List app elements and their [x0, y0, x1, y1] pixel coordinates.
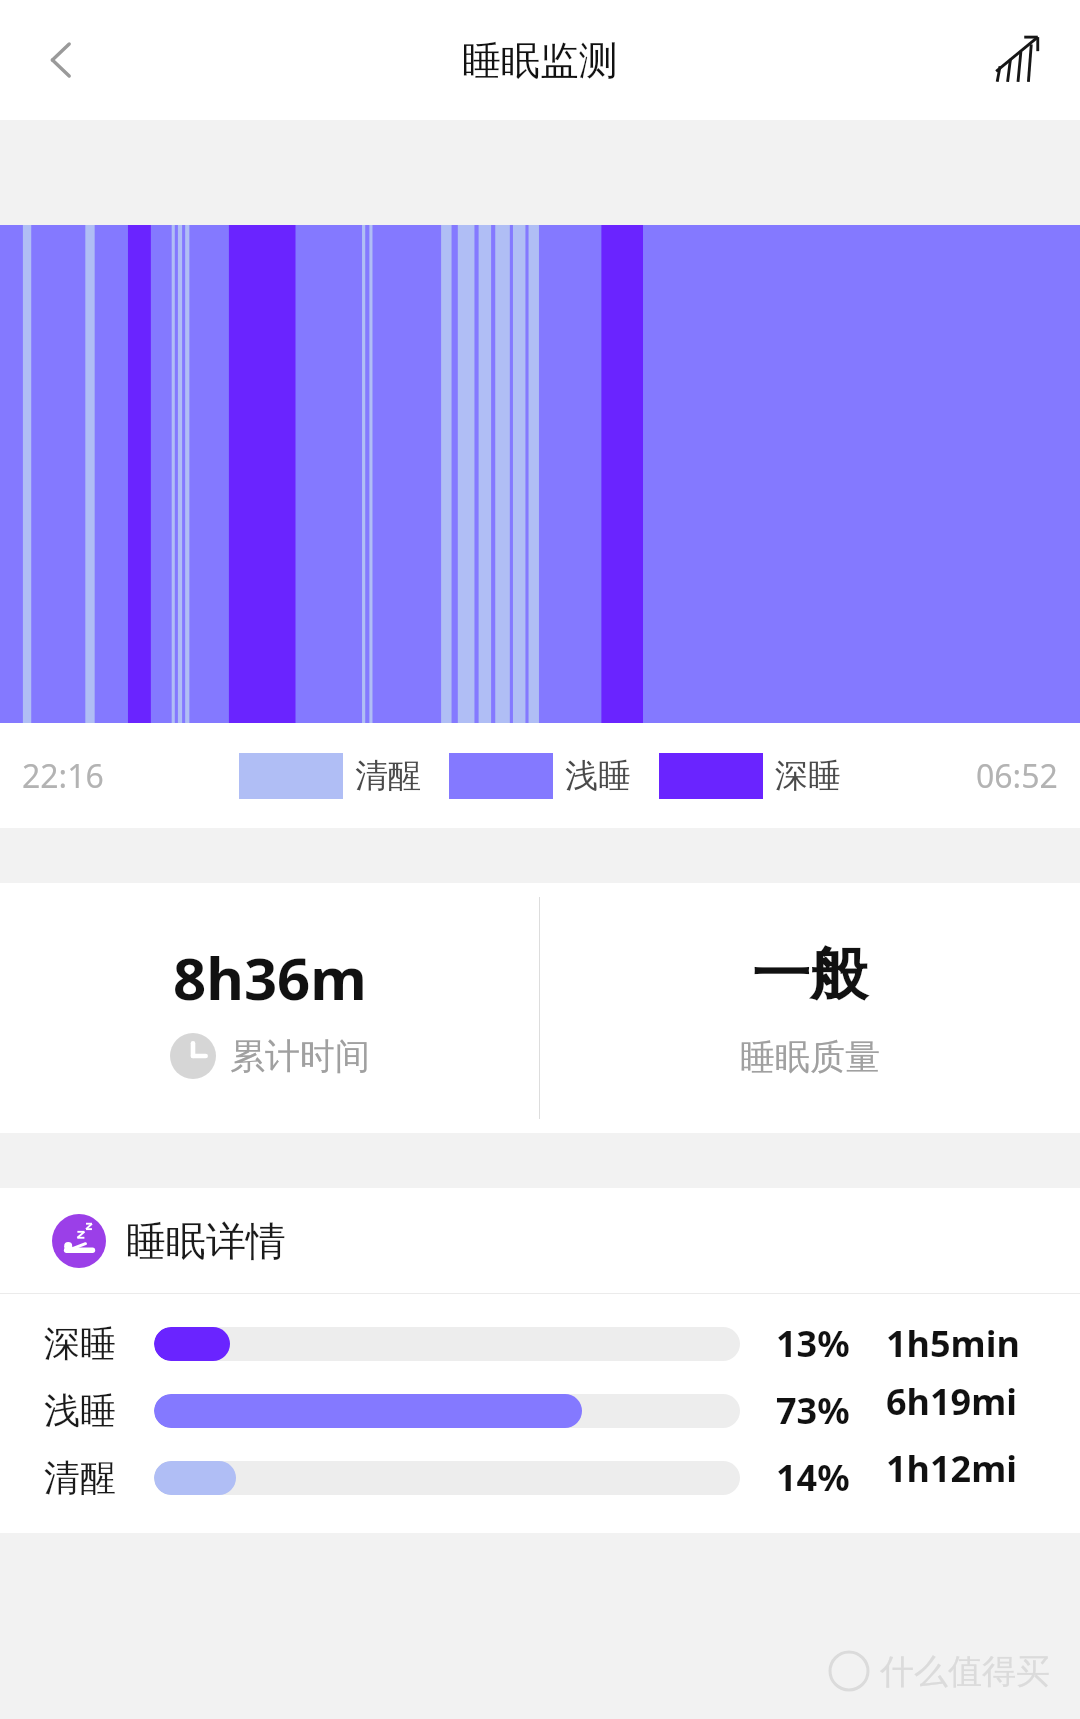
staticText: 睡眠质量 — [740, 1035, 880, 1079]
staticText: 8h36m — [173, 938, 367, 1017]
staticText: 睡眠监测 — [462, 36, 618, 85]
staticText: 浅睡 — [44, 1388, 154, 1433]
staticText: 1h12min — [886, 1444, 1036, 1511]
staticText: 浅睡 — [565, 755, 631, 797]
button[interactable]: Back — [24, 22, 100, 98]
staticText: 睡眠详情 — [126, 1216, 286, 1266]
button[interactable]: 睡眠详情 — [0, 1188, 1080, 1293]
staticText: 6h19min — [886, 1377, 1036, 1444]
staticText: 22:16 — [22, 754, 104, 798]
staticText: 清醒 — [44, 1455, 154, 1500]
staticText: 一般 — [752, 938, 868, 1011]
staticText: 13% — [776, 1319, 886, 1368]
staticText: 14% — [776, 1453, 886, 1502]
staticText: 累计时间 — [230, 1034, 370, 1078]
staticText: 73% — [776, 1386, 886, 1435]
staticText: 深睡 — [44, 1321, 154, 1366]
staticText: 06:52 — [976, 754, 1058, 798]
staticText: 什么值得买 — [880, 1650, 1050, 1693]
button[interactable]: Statistics — [980, 22, 1056, 98]
staticText: 深睡 — [775, 755, 841, 797]
staticText: 1h5min — [886, 1319, 1036, 1368]
staticText: 清醒 — [355, 755, 421, 797]
